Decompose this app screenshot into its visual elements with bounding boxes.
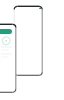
button[interactable] <box>0 29 12 34</box>
